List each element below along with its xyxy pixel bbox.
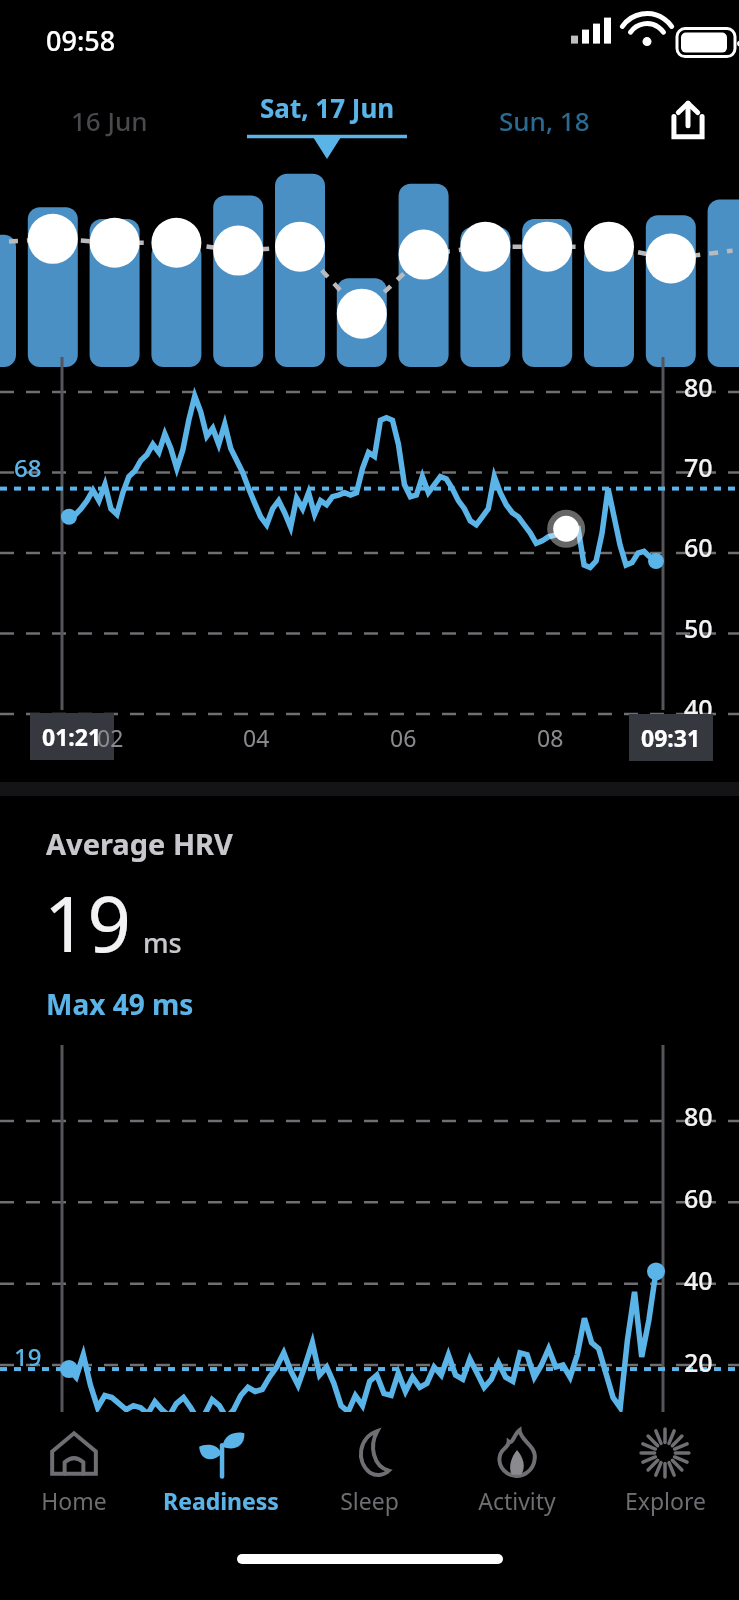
staticText: 04 (243, 722, 270, 753)
staticText: 20 (684, 1345, 713, 1379)
staticText: 16 Jun (71, 103, 148, 138)
staticText: Sleep (340, 1485, 399, 1516)
staticText: 80 (684, 1099, 713, 1133)
button[interactable]: Home (0, 1412, 147, 1530)
staticText: Sat, 17 Jun (260, 90, 395, 125)
button[interactable]: 16 Jun (8, 103, 210, 138)
staticText: Explore (625, 1485, 706, 1516)
staticText: Activity (478, 1485, 556, 1516)
staticText: 60 (684, 1181, 713, 1215)
staticText: Sun, 18 (499, 103, 590, 138)
staticText: 68 (14, 451, 42, 484)
staticText: 19 (44, 871, 131, 975)
staticText: 50 (684, 611, 713, 645)
staticText: 06 (390, 722, 417, 753)
button[interactable]: Share (645, 80, 731, 160)
staticText: 09:31 (641, 722, 701, 753)
button[interactable]: Activity (443, 1412, 591, 1530)
staticText: 70 (684, 450, 713, 484)
staticText: 60 (684, 530, 713, 564)
button[interactable]: Sat, 17 Jun (210, 90, 443, 151)
button[interactable]: Sleep (295, 1412, 443, 1530)
button[interactable]: Explore (591, 1412, 739, 1530)
staticText: 02 (97, 722, 124, 753)
button[interactable] (0, 160, 739, 357)
staticText: 40 (684, 1263, 713, 1297)
staticText: 19 (14, 1340, 42, 1373)
button[interactable]: Sun, 18 (443, 103, 645, 138)
staticText: 80 (684, 370, 713, 404)
staticText: 09:58 (46, 22, 116, 59)
staticText: ms (143, 924, 182, 961)
staticText: Readiness (163, 1485, 279, 1516)
staticText: Max 49 ms (46, 985, 194, 1023)
staticText: Average HRV (46, 824, 233, 863)
staticText: 01:21 (42, 721, 102, 752)
staticText: 08 (537, 722, 564, 753)
button[interactable]: Readiness (147, 1412, 295, 1530)
staticText: Home (41, 1485, 107, 1516)
staticText: 40 (684, 691, 713, 725)
